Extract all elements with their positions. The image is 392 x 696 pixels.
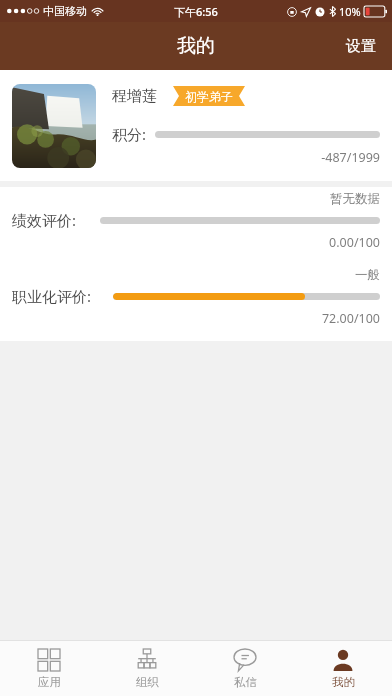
staticText: -487/1999	[112, 149, 380, 166]
staticText: 设置	[346, 37, 376, 56]
staticText: 暂无数据	[12, 191, 380, 207]
button[interactable]: 设置	[330, 27, 392, 66]
button[interactable]: 私信	[196, 641, 294, 696]
button[interactable]: 暂无数据	[0, 191, 392, 251]
staticText: 应用	[38, 675, 61, 689]
staticText: 我的	[177, 34, 215, 58]
button[interactable]: 程增莲	[0, 70, 392, 181]
button[interactable]: 一般	[0, 267, 392, 327]
staticText: 0.00/100	[12, 234, 380, 251]
staticText: 10%	[339, 4, 361, 19]
staticText: 72.00/100	[12, 310, 380, 327]
staticText: 私信	[234, 675, 257, 689]
staticText: 程增莲	[112, 87, 157, 106]
staticText: 初学弟子	[185, 89, 233, 104]
staticText: 中国移动	[43, 4, 87, 18]
staticText: 组织	[136, 675, 159, 689]
button[interactable]: 我的	[294, 641, 392, 696]
staticText: 一般	[12, 267, 380, 283]
staticText: 职业化评价:	[12, 286, 92, 306]
button[interactable]: 组织	[98, 641, 196, 696]
staticText: 下午6:56	[174, 4, 218, 19]
staticText: 绩效评价:	[12, 210, 77, 230]
staticText: 积分:	[112, 124, 147, 144]
button[interactable]: 应用	[0, 641, 98, 696]
staticText: 我的	[332, 675, 355, 689]
